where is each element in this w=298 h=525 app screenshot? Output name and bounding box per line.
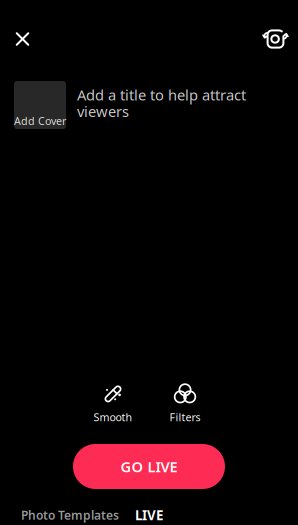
staticText: GO LIVE xyxy=(120,457,177,476)
staticText: Filters xyxy=(169,410,200,424)
button[interactable]: Photo Templates xyxy=(17,506,123,524)
staticText: Add Cover xyxy=(14,114,66,128)
staticText: LIVE xyxy=(135,506,163,524)
staticText: Photo Templates xyxy=(21,507,119,523)
button[interactable]: Flip camera xyxy=(253,22,297,56)
button[interactable]: Add Cover xyxy=(14,81,66,129)
button[interactable]: Close xyxy=(0,22,44,56)
button[interactable]: Filters xyxy=(149,379,221,429)
button[interactable]: LIVE xyxy=(123,506,175,524)
button[interactable]: Add a title to help attract xyxy=(77,81,255,129)
staticText: Smooth xyxy=(93,410,132,424)
staticText: Add a title to help attract xyxy=(77,85,246,104)
staticText: viewers xyxy=(77,101,129,121)
button[interactable]: Smooth xyxy=(77,379,149,429)
button[interactable]: GO LIVE xyxy=(73,444,225,489)
